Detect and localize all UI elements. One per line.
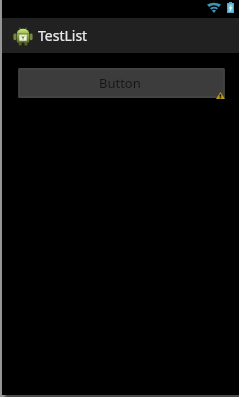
staticText: TestList [38, 26, 88, 45]
button[interactable]: Button [18, 68, 225, 98]
other: Wi-Fi signal [207, 3, 221, 13]
staticText: Button [99, 74, 141, 92]
other: Battery charging [227, 2, 234, 13]
